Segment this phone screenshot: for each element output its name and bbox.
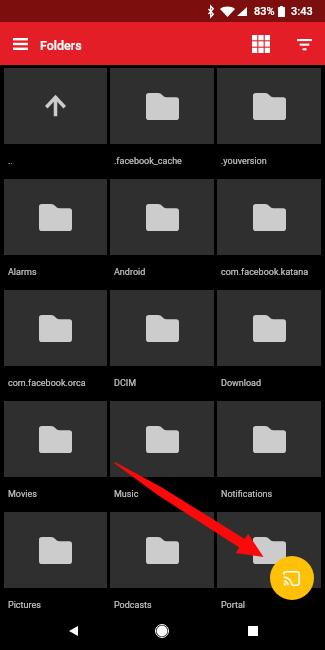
staticText: Folders — [40, 38, 82, 53]
staticText: com.facebook.orca — [8, 378, 86, 389]
staticText: Android — [114, 267, 146, 278]
button[interactable]: DCIM — [110, 290, 214, 401]
button[interactable]: Music — [110, 401, 214, 512]
button[interactable]: Notifications — [217, 401, 321, 512]
button[interactable]: Recent apps — [229, 612, 277, 650]
button[interactable]: Podcasts — [110, 512, 214, 623]
button[interactable]: Movies — [4, 401, 107, 512]
staticText: Movies — [8, 489, 37, 500]
button[interactable]: Cast — [270, 556, 314, 600]
staticText: .facebook_cache — [114, 156, 182, 167]
staticText: Portal — [221, 600, 246, 611]
staticText: Pictures — [8, 600, 41, 611]
staticText: Podcasts — [114, 600, 152, 611]
staticText: 3:43 — [291, 5, 313, 18]
button[interactable]: Download — [217, 290, 321, 401]
staticText: Download — [221, 378, 262, 389]
button[interactable]: com.facebook.orca — [4, 290, 107, 401]
button[interactable]: Menu — [13, 38, 28, 50]
staticText: Alarms — [8, 267, 37, 278]
button[interactable]: Grid view — [252, 35, 270, 53]
button[interactable]: Alarms — [4, 179, 107, 290]
button[interactable]: .youversion — [217, 68, 321, 179]
staticText: 83% — [254, 5, 275, 18]
button[interactable]: Portal — [217, 512, 321, 623]
staticText: com.facebook.katana — [221, 267, 309, 278]
button[interactable]: .. — [4, 68, 107, 179]
button[interactable]: Home — [138, 612, 186, 650]
staticText: DCIM — [114, 378, 137, 389]
staticText: Notifications — [221, 489, 273, 500]
button[interactable]: Pictures — [4, 512, 107, 623]
staticText: .youversion — [221, 156, 267, 167]
button[interactable]: com.facebook.katana — [217, 179, 321, 290]
button[interactable]: Android — [110, 179, 214, 290]
button[interactable]: Back — [49, 612, 97, 650]
button[interactable]: Sort — [297, 39, 312, 50]
staticText: Music — [114, 489, 139, 500]
button[interactable]: .facebook_cache — [110, 68, 214, 179]
staticText: .. — [8, 156, 13, 167]
